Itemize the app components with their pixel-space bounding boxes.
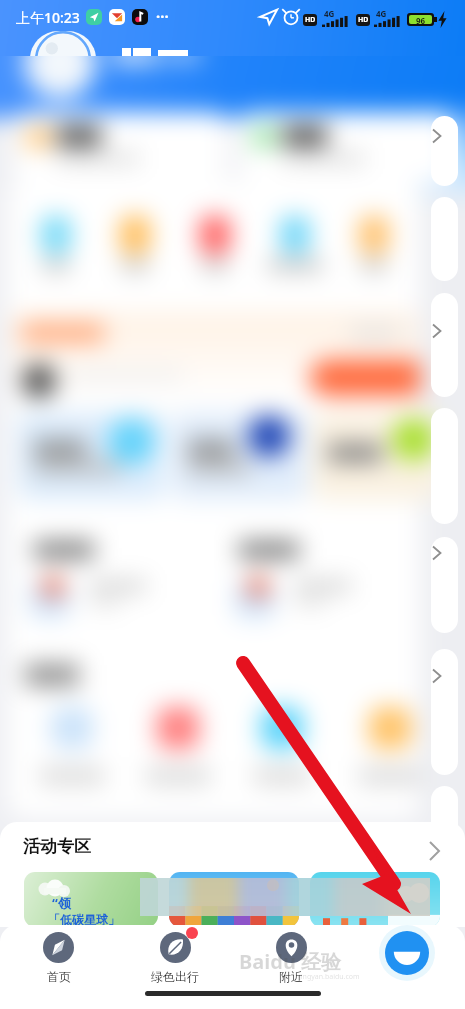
button[interactable]: 附近 bbox=[233, 925, 349, 989]
button[interactable] bbox=[169, 872, 299, 927]
staticText: Baidu 经验 bbox=[239, 948, 342, 975]
button[interactable]: “领 bbox=[24, 872, 158, 927]
staticText: jingyan.baidu.com bbox=[299, 972, 360, 982]
staticText: 活动专区 bbox=[23, 836, 91, 857]
staticText: 「低碳星球」 bbox=[48, 912, 120, 927]
button[interactable]: Profile bbox=[30, 31, 96, 56]
staticText: 上午10:23 bbox=[16, 8, 80, 27]
staticText: HD bbox=[358, 15, 369, 25]
button[interactable]: Expand panel bbox=[431, 197, 458, 281]
staticText: 96 bbox=[416, 15, 426, 24]
staticText: 绿色出行 bbox=[151, 969, 199, 984]
staticText: “领 bbox=[52, 894, 71, 912]
staticText: 首页 bbox=[47, 969, 71, 984]
button[interactable]: Expand panel bbox=[431, 649, 458, 775]
button[interactable]: Expand panel bbox=[431, 537, 458, 633]
staticText: 附近 bbox=[279, 969, 303, 984]
button[interactable]: 首页 bbox=[0, 925, 117, 989]
button[interactable]: Voice assistant bbox=[385, 931, 429, 975]
staticText: ··· bbox=[156, 6, 169, 26]
button[interactable]: 绿色出行 bbox=[117, 925, 233, 989]
staticText: 4G bbox=[324, 8, 335, 19]
button[interactable]: 活动专区 bbox=[0, 822, 465, 927]
button[interactable]: Expand panel bbox=[431, 293, 458, 397]
button[interactable]: Expand panel bbox=[431, 116, 458, 186]
button[interactable]: Expand panel bbox=[431, 786, 458, 896]
staticText: 4G bbox=[376, 8, 387, 19]
button[interactable]: More activities bbox=[424, 836, 448, 860]
button[interactable] bbox=[310, 872, 440, 927]
staticText: HD bbox=[305, 15, 316, 25]
button[interactable]: Expand panel bbox=[431, 408, 458, 524]
